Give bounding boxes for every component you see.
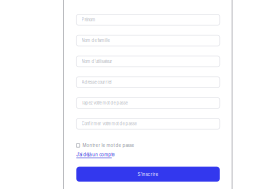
button[interactable]: Adresse courriel (76, 77, 220, 88)
staticText: Confirmer votre mot de passe (81, 121, 136, 126)
button[interactable]: Confirmer votre mot de passe (76, 118, 220, 129)
button[interactable]: S'inscrire (76, 167, 220, 182)
staticText: Prénom (81, 17, 95, 22)
button[interactable]: Nom de famille (76, 35, 220, 46)
button[interactable]: J'ai déjà un compte (76, 152, 114, 158)
staticText: Nom de famille (81, 38, 109, 43)
staticText: Nom d'utilisateur (81, 59, 112, 64)
staticText: S'inscrire (138, 171, 159, 177)
button[interactable]: Tapez votre mot de passe (76, 98, 220, 108)
button[interactable]: Prénom (76, 14, 220, 25)
staticText: Montrer le mot de passe (82, 143, 134, 148)
staticText: J'ai déjà un compte (76, 152, 114, 157)
staticText: Adresse courriel (81, 80, 111, 85)
button[interactable]: Nom d'utilisateur (76, 56, 220, 67)
staticText: Tapez votre mot de passe (81, 100, 127, 105)
button[interactable]: Montrer le mot de passe (76, 143, 220, 148)
